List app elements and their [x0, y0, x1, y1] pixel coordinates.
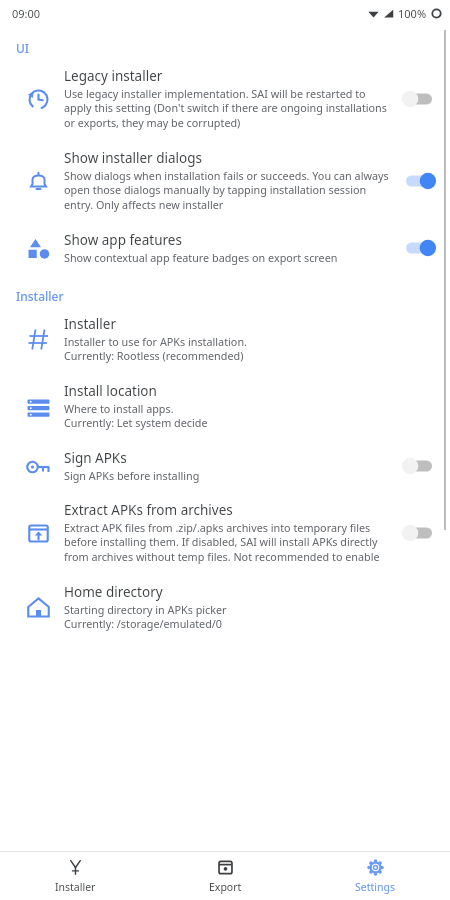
staticText: UI [16, 40, 30, 56]
button[interactable]: Installer [0, 852, 150, 900]
other: Installer [67, 859, 84, 876]
button[interactable]: Legacy installer [0, 58, 450, 140]
staticText: Settings [355, 880, 395, 894]
staticText: Show dialogs when installation fails or … [64, 168, 392, 213]
staticText: Installer [16, 288, 64, 304]
button[interactable]: Installer [0, 306, 450, 373]
button[interactable]: Install location [0, 373, 450, 440]
button[interactable]: Export [150, 852, 300, 900]
staticText: Installer [64, 315, 116, 333]
staticText: Where to install apps. Currently: Let sy… [64, 401, 208, 431]
staticText: 09:00 [12, 6, 41, 21]
staticText: Show app features [64, 231, 182, 249]
staticText: Show installer dialogs [64, 149, 202, 167]
button[interactable]: Toggle on [398, 168, 440, 194]
button[interactable]: Home directory [0, 574, 450, 641]
staticText: Sign APKs before installing [64, 468, 200, 483]
staticText: Install location [64, 382, 157, 400]
staticText: Installer to use for APKs installation. … [64, 334, 247, 364]
button[interactable]: Toggle off [398, 520, 440, 546]
staticText: Sign APKs [64, 449, 127, 467]
other: Settings [367, 859, 384, 876]
staticText: 100% [398, 6, 427, 21]
staticText: Extract APK files from .zip/.apks archiv… [64, 520, 392, 565]
staticText: Legacy installer [64, 67, 163, 85]
button[interactable]: Show installer dialogs [0, 140, 450, 222]
button[interactable]: Toggle off [398, 453, 440, 479]
button[interactable]: Show app features [0, 222, 450, 274]
staticText: Installer [55, 880, 96, 894]
button[interactable]: Settings [300, 852, 450, 900]
button[interactable]: Sign APKs [0, 440, 450, 492]
staticText: Starting directory in APKs picker Curren… [64, 602, 227, 632]
staticText: Show contextual app feature badges on ex… [64, 250, 338, 265]
staticText: Use legacy installer implementation. SAI… [64, 86, 392, 131]
staticText: Export [209, 880, 242, 894]
other: Export [217, 859, 234, 876]
staticText: Extract APKs from archives [64, 501, 233, 519]
button[interactable]: Toggle on [398, 235, 440, 261]
button[interactable]: Extract APKs from archives [0, 492, 450, 574]
staticText: Home directory [64, 583, 163, 601]
button[interactable]: Toggle off [398, 86, 440, 112]
